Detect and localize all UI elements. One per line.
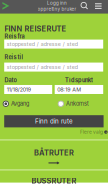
staticText: opprett ny bruker — [37, 6, 76, 12]
button[interactable]: stoppested / adresse / sted — [0, 0, 103, 49]
staticText: Reis fra — [5, 33, 25, 40]
staticText: FINN REISERUTE — [5, 24, 67, 33]
button[interactable]: BUSSRUTER — [0, 0, 108, 184]
button[interactable]: Search — [0, 0, 88, 9]
staticText: BUSSRUTER — [31, 176, 76, 184]
staticText: 08:19 AM — [57, 86, 81, 93]
button[interactable]: Logg inn — [0, 0, 83, 14]
button[interactable]: Ankomst — [0, 0, 106, 107]
button[interactable]: Menu — [0, 0, 102, 9]
button[interactable]: stoppested / adresse / sted — [0, 0, 103, 72]
staticText: 11/18/2019 — [7, 86, 31, 93]
button[interactable]: 11/18/2019 — [0, 0, 52, 94]
staticText: Ankomst — [66, 100, 89, 107]
staticText: Logg inn — [47, 0, 67, 6]
staticText: Dato — [5, 77, 17, 84]
staticText: stoppested / adresse / sted — [7, 41, 78, 47]
staticText: stoppested / adresse / sted — [7, 64, 78, 70]
button[interactable]: Finn din rute — [0, 0, 104, 127]
button[interactable]: BÅTRUTER — [0, 0, 108, 164]
staticText: Flere valg — [80, 129, 103, 135]
staticText: Reis til — [5, 54, 24, 61]
button[interactable]: Home — [0, 0, 10, 10]
staticText: Tidspunkt — [65, 77, 93, 84]
button[interactable]: Flere valg — [0, 0, 108, 135]
button[interactable]: 08:19 AM — [0, 0, 103, 94]
staticText: Finn din rute — [35, 118, 73, 125]
button[interactable]: Avgang — [0, 0, 51, 107]
staticText: Avgang — [11, 100, 29, 107]
staticText: + — [105, 130, 107, 134]
staticText: BÅTRUTER — [34, 148, 74, 157]
